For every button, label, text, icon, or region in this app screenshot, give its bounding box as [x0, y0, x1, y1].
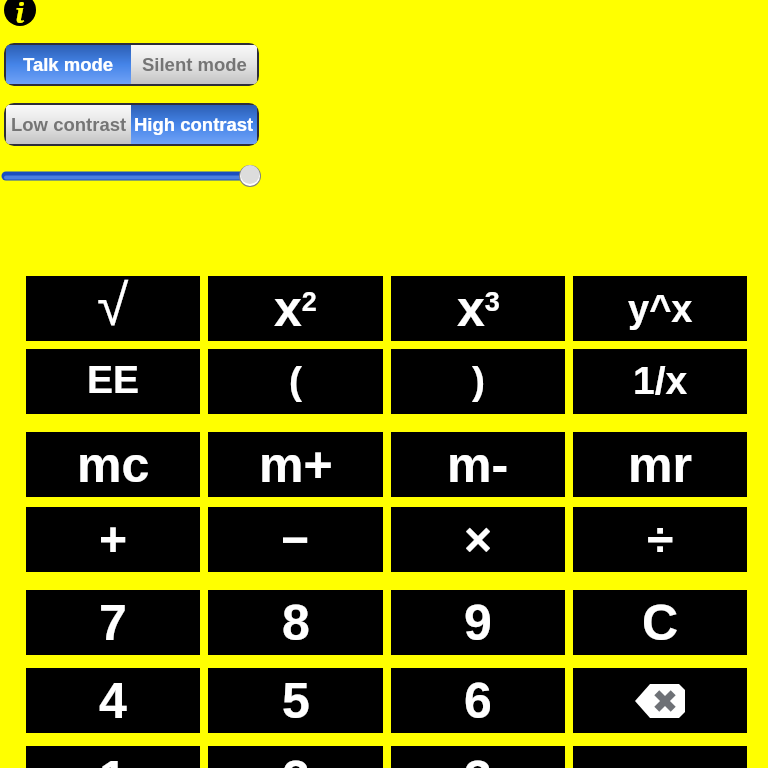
staticText: Low contrast [11, 114, 127, 135]
staticText: 9 [464, 595, 492, 651]
staticText: 3 [464, 751, 492, 768]
button[interactable]: Speech rate [2, 162, 262, 190]
button[interactable]: × [391, 507, 565, 572]
button[interactable]: ) [391, 349, 565, 414]
staticText: x2 [274, 281, 317, 337]
button[interactable]: ( [208, 349, 383, 414]
staticText: x3 [457, 281, 500, 337]
button[interactable]: 3 [391, 746, 565, 768]
button[interactable]: 7 [26, 590, 200, 655]
staticText: ÷ [647, 513, 674, 567]
staticText: 1 [99, 751, 127, 768]
staticText: y^x [628, 288, 693, 330]
button[interactable]: Delete [573, 668, 747, 733]
button[interactable]: ÷ [573, 507, 747, 572]
staticText: √ [97, 273, 129, 337]
staticText: 1/x [633, 359, 688, 403]
staticText: mr [628, 437, 692, 493]
staticText: Talk mode [23, 54, 114, 75]
button[interactable]: High contrast [131, 105, 257, 144]
staticText: 7 [99, 595, 127, 651]
button[interactable]: m+ [208, 432, 383, 497]
staticText: 6 [464, 673, 492, 729]
staticText: i [15, 0, 25, 26]
staticText: C [642, 595, 679, 651]
staticText: m- [447, 437, 509, 493]
button[interactable]: x3 [391, 276, 565, 341]
button[interactable]: 5 [208, 668, 383, 733]
button[interactable]: mc [26, 432, 200, 497]
staticText: High contrast [134, 114, 254, 135]
button[interactable]: Talk mode [6, 45, 131, 84]
button[interactable]: 9 [391, 590, 565, 655]
staticText: + [99, 513, 128, 567]
button[interactable]: y^x [573, 276, 747, 341]
staticText: mc [77, 437, 150, 493]
button[interactable]: 2 [208, 746, 383, 768]
button[interactable]: 1/x [573, 349, 747, 414]
button[interactable]: Info [4, 0, 36, 26]
button[interactable]: Low contrast [6, 105, 131, 144]
staticText: × [464, 513, 493, 567]
button[interactable]: Silent mode [131, 45, 257, 84]
staticText: 5 [282, 673, 310, 729]
button[interactable]: x2 [208, 276, 383, 341]
staticText: 8 [282, 595, 310, 651]
button[interactable]: 8 [208, 590, 383, 655]
staticText: Silent mode [142, 54, 247, 75]
button[interactable]: C [573, 590, 747, 655]
button[interactable]: mr [573, 432, 747, 497]
staticText: 4 [99, 673, 127, 729]
button[interactable]: − [208, 507, 383, 572]
button[interactable]: + [26, 507, 200, 572]
staticText: EE [87, 358, 140, 402]
staticText: m+ [259, 437, 333, 493]
button[interactable]: 1 [26, 746, 200, 768]
staticText: − [281, 513, 310, 567]
button[interactable]: √ [26, 276, 200, 341]
button[interactable]: 6 [391, 668, 565, 733]
staticText: 2 [282, 751, 310, 768]
button[interactable]: m- [391, 432, 565, 497]
staticText: ( [289, 359, 302, 403]
staticText: ) [472, 359, 485, 403]
button[interactable]: 4 [26, 668, 200, 733]
button[interactable]: EE [26, 349, 200, 414]
